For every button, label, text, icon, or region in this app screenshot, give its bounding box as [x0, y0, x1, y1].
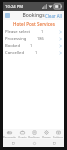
staticText: 1	[30, 43, 33, 48]
button[interactable]: Reservations	[3, 129, 16, 139]
button[interactable]: Settings	[52, 129, 64, 139]
staticText: Hotel Post Services	[13, 21, 55, 27]
staticText: Processing	[5, 36, 27, 42]
staticText: 1	[35, 50, 38, 55]
button[interactable]: Clear All	[43, 12, 64, 20]
button[interactable]: Please select	[3, 28, 64, 35]
staticText: Reservations	[3, 136, 16, 138]
button[interactable]: Booked	[3, 42, 64, 49]
staticText: Clear All	[45, 13, 62, 19]
button[interactable]: Guests	[16, 129, 28, 139]
staticText: Cancelled	[5, 50, 25, 56]
staticText: Rooms	[42, 136, 51, 138]
button[interactable]: Rooms	[40, 129, 52, 139]
staticText: Booked	[5, 43, 20, 49]
button[interactable]: Cancelled	[3, 49, 64, 56]
staticText: Please select	[5, 29, 31, 35]
staticText: Guests	[18, 136, 27, 138]
staticText: Settings	[53, 136, 63, 138]
button[interactable]: Processing	[3, 35, 64, 42]
staticText: 1	[41, 29, 44, 34]
button[interactable]: Recents	[44, 139, 64, 147]
button[interactable]: Menu	[5, 13, 10, 18]
staticText: Bookings	[22, 12, 45, 19]
staticText: 10:24 PM	[5, 4, 24, 10]
staticText: Bookings	[28, 136, 40, 138]
button[interactable]: Home	[24, 139, 44, 147]
button[interactable]: Back	[3, 139, 24, 147]
staticText: 186	[37, 36, 44, 41]
button[interactable]: Bookings	[28, 129, 40, 139]
